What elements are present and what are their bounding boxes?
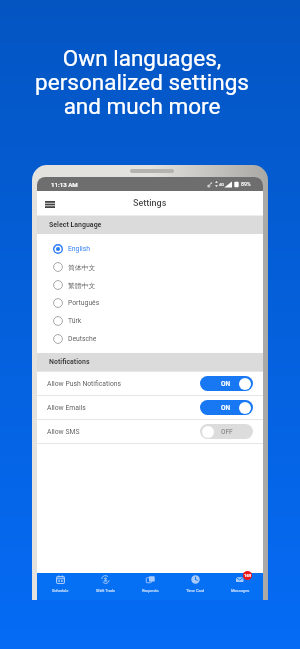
staticText: Shift Trade [96, 588, 116, 593]
button[interactable]: Schedule [37, 573, 83, 600]
staticText: Schedule [52, 588, 69, 593]
button[interactable]: Allow SMS [37, 420, 263, 443]
staticText: OFF [221, 428, 233, 436]
staticText: 11:13 AM [51, 181, 78, 188]
staticText: Allow Push Notifications [47, 380, 122, 388]
staticText: Allow SMS [47, 428, 80, 436]
staticText: 89% [241, 181, 251, 187]
staticText: Settings [133, 198, 167, 209]
staticText: 繁體中文 [68, 281, 96, 290]
button[interactable]: Deutsche [37, 330, 263, 348]
staticText: 简体中文 [68, 263, 96, 272]
staticText: Requests [142, 588, 159, 593]
staticText: Messages [231, 588, 250, 593]
staticText: Deutsche [68, 335, 97, 343]
staticText: ON [221, 380, 231, 388]
button[interactable]: 169 [218, 573, 263, 600]
staticText: Notifications [49, 358, 90, 366]
staticText: Select Language [49, 221, 102, 229]
staticText: Time Card [186, 588, 205, 593]
staticText: 169 [244, 573, 252, 578]
staticText: Own languages, personalized settings and… [0, 45, 292, 119]
button[interactable]: Português [37, 294, 263, 312]
button[interactable]: Türk [37, 312, 263, 330]
button[interactable]: Allow Push Notifications [37, 372, 263, 395]
button[interactable]: Open navigation menu [40, 194, 60, 214]
button[interactable]: Requests [128, 573, 173, 600]
button[interactable]: Shift Trade [83, 573, 128, 600]
staticText: ON [221, 404, 231, 412]
button[interactable]: English [37, 240, 263, 258]
staticText: Allow Emails [47, 404, 86, 412]
button[interactable]: 简体中文 [37, 258, 263, 276]
staticText: 4G [219, 182, 224, 187]
staticText: Türk [68, 317, 82, 325]
staticText: English [68, 245, 90, 253]
staticText: Português [68, 299, 100, 307]
button[interactable]: 繁體中文 [37, 276, 263, 294]
button[interactable]: Allow Emails [37, 396, 263, 419]
button[interactable]: Time Card [173, 573, 218, 600]
